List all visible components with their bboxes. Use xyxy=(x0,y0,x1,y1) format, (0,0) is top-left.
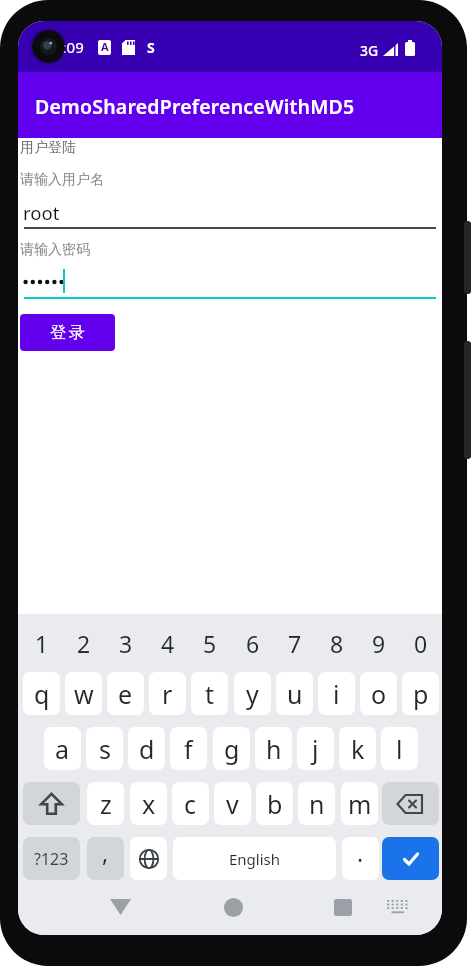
button[interactable] xyxy=(382,782,439,825)
button[interactable]: i xyxy=(318,672,355,715)
staticText: 0 xyxy=(414,628,428,656)
button[interactable]: e xyxy=(107,672,144,715)
button[interactable]: u xyxy=(276,672,313,715)
staticText: 用户登陆 xyxy=(20,139,76,157)
staticText: f xyxy=(184,732,193,766)
staticText: 3 xyxy=(119,628,133,656)
button[interactable]: . xyxy=(342,837,379,880)
staticText: 登录 xyxy=(49,323,86,343)
staticText: S xyxy=(147,38,155,57)
button[interactable]: 6 xyxy=(234,628,271,656)
staticText: English xyxy=(229,849,281,869)
staticText: b xyxy=(267,787,283,821)
staticText: w xyxy=(74,677,94,711)
button[interactable]: English xyxy=(173,837,336,880)
staticText: 5 xyxy=(203,628,217,656)
staticText: l xyxy=(396,732,403,766)
staticText: A xyxy=(101,39,109,54)
button[interactable]: r xyxy=(149,672,186,715)
staticText: 6 xyxy=(246,628,260,656)
staticText: ?123 xyxy=(34,848,69,870)
staticText: t xyxy=(205,677,215,711)
staticText: m xyxy=(348,787,372,821)
staticText: 4 xyxy=(161,628,175,656)
staticText: g xyxy=(224,732,240,766)
staticText: 9 xyxy=(372,628,386,656)
button[interactable]: f xyxy=(170,727,207,770)
button[interactable]: 7 xyxy=(276,628,313,656)
button[interactable] xyxy=(23,782,80,825)
staticText: 8 xyxy=(330,628,344,656)
button[interactable] xyxy=(382,895,414,919)
staticText: 3G xyxy=(360,41,379,60)
button[interactable]: v xyxy=(214,782,251,825)
button[interactable] xyxy=(130,837,167,880)
button[interactable]: c xyxy=(172,782,209,825)
button[interactable]: o xyxy=(360,672,397,715)
staticText: x xyxy=(142,787,156,821)
staticText: root xyxy=(23,200,60,225)
button[interactable]: t xyxy=(191,672,228,715)
button[interactable]: 1 xyxy=(23,628,60,656)
button[interactable]: d xyxy=(128,727,165,770)
button[interactable]: y xyxy=(234,672,271,715)
button[interactable]: l xyxy=(381,727,418,770)
button[interactable]: z xyxy=(87,782,124,825)
staticText: d xyxy=(139,732,155,766)
staticText: 1:09 xyxy=(54,37,84,57)
staticText: u xyxy=(287,677,303,711)
staticText: 请输入用户名 xyxy=(20,171,104,189)
button[interactable]: a xyxy=(44,727,81,770)
button[interactable]: 登录 xyxy=(20,314,115,351)
button[interactable]: m xyxy=(341,782,378,825)
button[interactable]: h xyxy=(255,727,292,770)
staticText: j xyxy=(312,732,319,766)
button[interactable]: s xyxy=(86,727,123,770)
staticText: p xyxy=(413,677,429,711)
button[interactable]: 4 xyxy=(149,628,186,656)
staticText: n xyxy=(309,787,325,821)
staticText: r xyxy=(162,677,173,711)
button[interactable]: 3 xyxy=(107,628,144,656)
staticText: q xyxy=(34,677,50,711)
button[interactable]: 8 xyxy=(318,628,355,656)
button[interactable]: n xyxy=(298,782,335,825)
button[interactable]: 2 xyxy=(65,628,102,656)
button[interactable]: p xyxy=(402,672,439,715)
button[interactable]: b xyxy=(256,782,293,825)
button[interactable] xyxy=(103,893,137,921)
button[interactable]: 5 xyxy=(191,628,228,656)
staticText: s xyxy=(99,732,111,766)
staticText: e xyxy=(118,677,133,711)
staticText: z xyxy=(100,787,112,821)
button[interactable]: ?123 xyxy=(23,837,80,880)
staticText: , xyxy=(102,837,109,868)
staticText: 1 xyxy=(35,628,49,656)
button[interactable] xyxy=(328,893,358,921)
button[interactable]: x xyxy=(130,782,167,825)
button[interactable]: q xyxy=(23,672,60,715)
staticText: 7 xyxy=(288,628,302,656)
staticText: 请输入密码 xyxy=(20,241,90,259)
button[interactable]: 9 xyxy=(360,628,397,656)
staticText: a xyxy=(55,732,70,766)
staticText: . xyxy=(357,837,364,868)
staticText: v xyxy=(226,787,239,821)
staticText: h xyxy=(266,732,282,766)
button[interactable] xyxy=(218,893,248,921)
button[interactable]: w xyxy=(65,672,102,715)
button[interactable]: 0 xyxy=(402,628,439,656)
button[interactable]: j xyxy=(297,727,334,770)
staticText: y xyxy=(246,677,259,711)
staticText: 2 xyxy=(77,628,91,656)
staticText: k xyxy=(351,732,365,766)
button[interactable] xyxy=(382,837,439,880)
staticText: c xyxy=(184,787,197,821)
staticText: i xyxy=(333,677,340,711)
staticText: DemoSharedPreferenceWithMD5 xyxy=(35,93,355,120)
button[interactable]: k xyxy=(339,727,376,770)
button[interactable]: g xyxy=(213,727,250,770)
staticText: o xyxy=(371,677,387,711)
button[interactable]: , xyxy=(87,837,124,880)
